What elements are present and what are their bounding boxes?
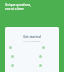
button[interactable]	[32, 43, 59, 52]
staticText: Get started	[5, 35, 59, 39]
button[interactable]	[32, 52, 59, 61]
staticText: pick a category	[5, 39, 59, 42]
button[interactable]	[5, 43, 32, 52]
button[interactable]	[5, 61, 32, 70]
staticText: Unique questions,	[5, 3, 31, 7]
button[interactable]	[32, 61, 59, 70]
button[interactable]	[5, 52, 32, 61]
staticText: one at a time	[5, 7, 24, 11]
